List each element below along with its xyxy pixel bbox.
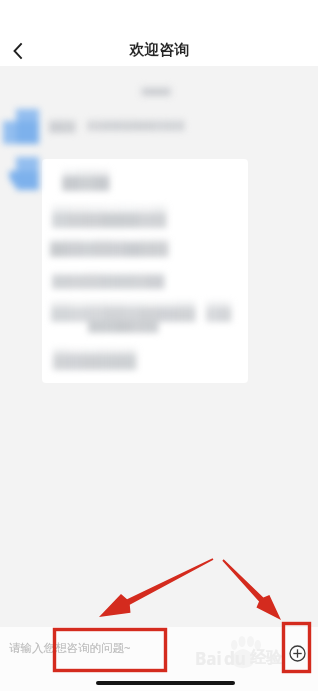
staticText: 请输入您想咨询的问题~ (9, 640, 131, 656)
button[interactable] (42, 159, 248, 383)
button[interactable]: Back (3, 36, 33, 66)
staticText: du (224, 647, 246, 670)
button[interactable]: More options (289, 645, 306, 662)
staticText: 欢迎咨询 (129, 41, 189, 60)
staticText: Bai (195, 647, 222, 670)
staticText: 经验 (250, 648, 282, 668)
